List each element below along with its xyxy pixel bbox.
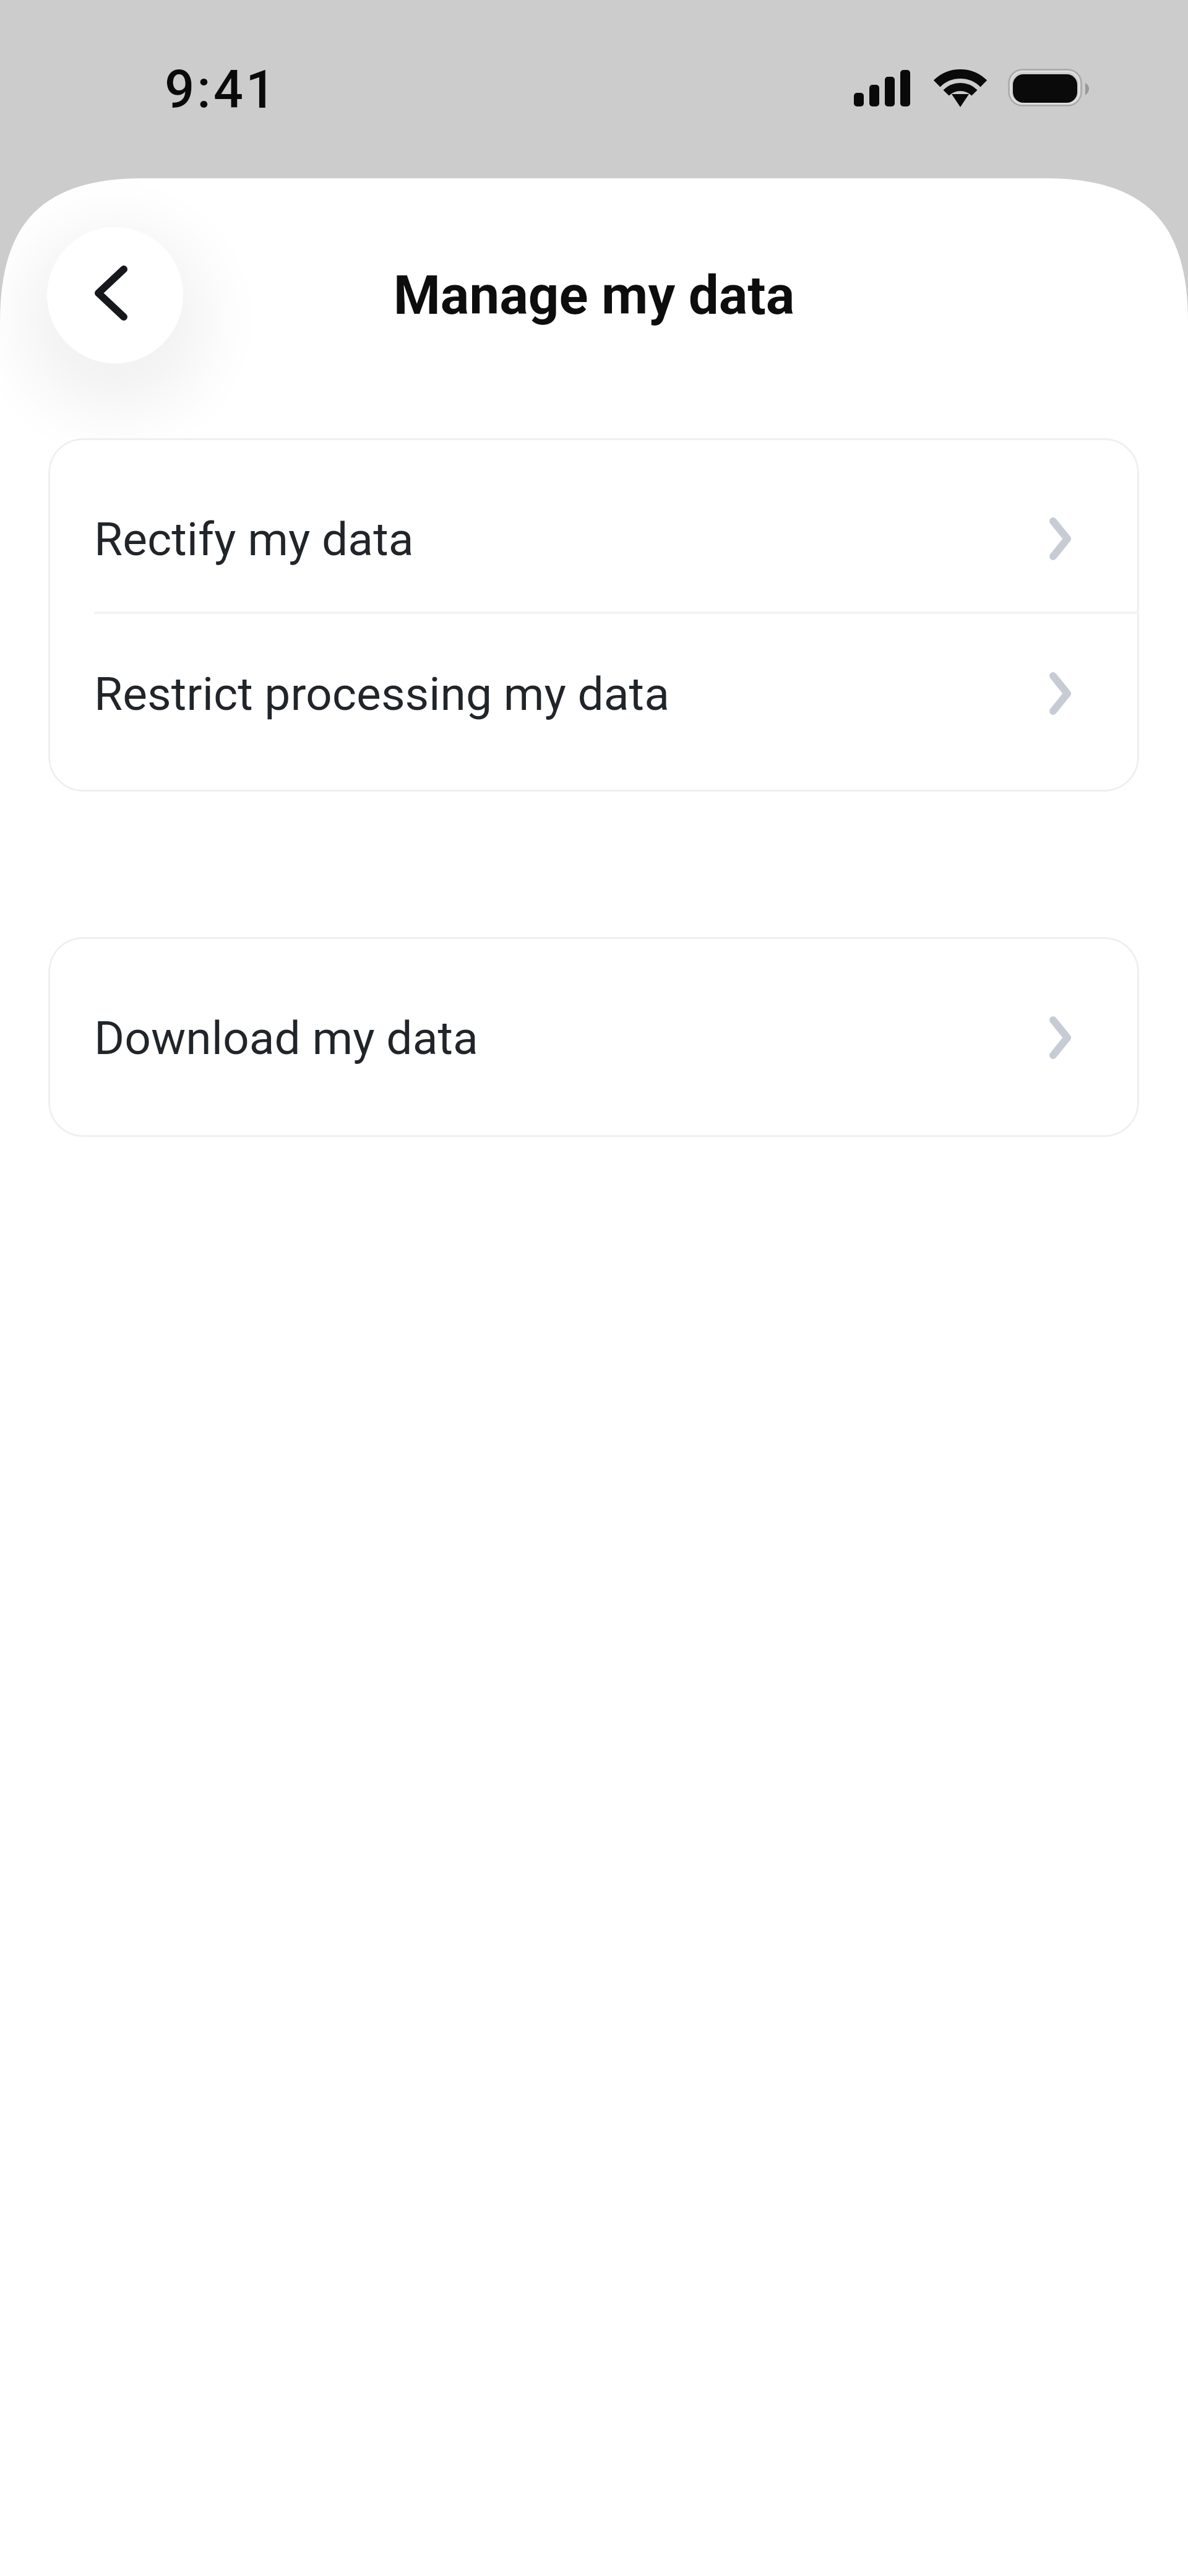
staticText: Download my data [94, 1011, 478, 1065]
button[interactable]: Back [47, 227, 183, 363]
staticText: Rectify my data [94, 512, 414, 566]
staticText: Manage my data [0, 264, 1188, 327]
button[interactable]: Download my data [48, 937, 1139, 1137]
button[interactable]: Rectify my data [48, 438, 1139, 613]
button[interactable]: Restrict processing my data [48, 613, 1139, 792]
staticText: 9:41 [165, 59, 278, 121]
staticText: Restrict processing my data [94, 667, 669, 721]
